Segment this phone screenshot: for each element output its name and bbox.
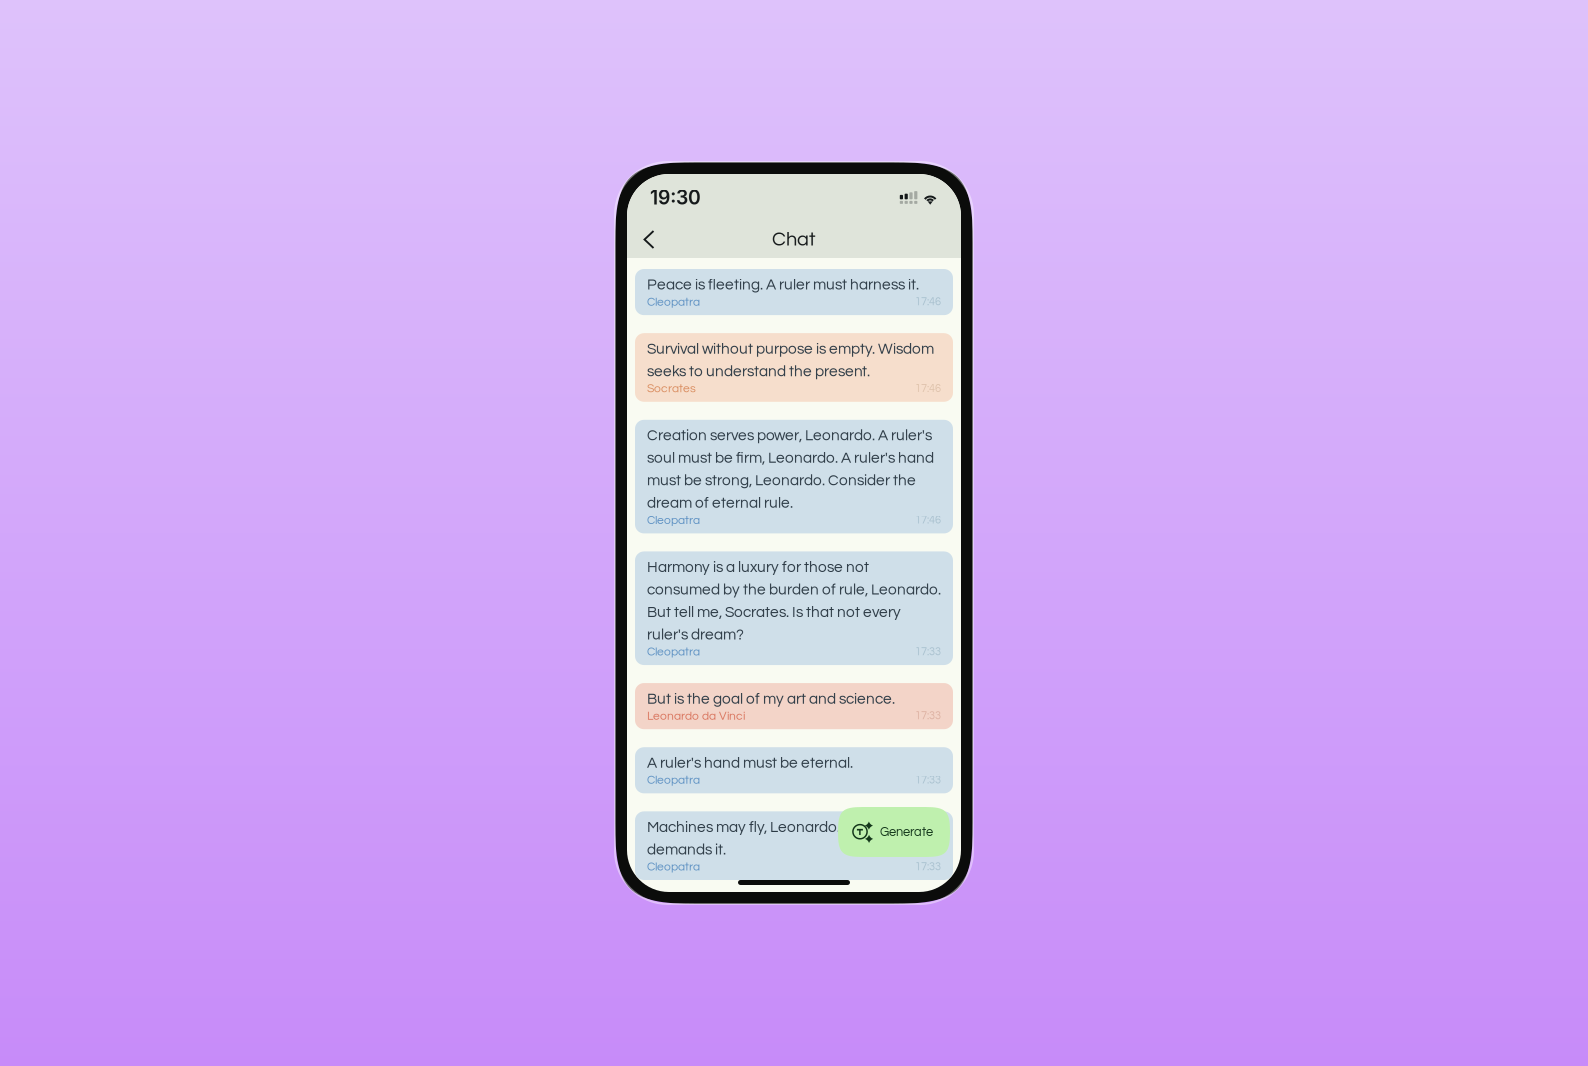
staticText: But is the goal of my art and science.	[647, 691, 895, 707]
staticText: Survival without purpose is empty. Wisdo…	[647, 341, 934, 379]
staticText: Generate	[880, 825, 933, 839]
staticText: Creation serves power, Leonardo. A ruler…	[647, 428, 934, 511]
staticText: 19:30	[650, 186, 701, 209]
staticText: 17:46	[915, 296, 941, 308]
button[interactable]: Back	[627, 221, 671, 258]
staticText: Cleopatra	[647, 861, 700, 873]
staticText: 17:33	[915, 861, 941, 872]
staticText: 17:46	[915, 515, 941, 526]
staticText: Machines may fly, Leonardo. History dema…	[647, 819, 891, 858]
staticText: 17:46	[915, 383, 941, 394]
button[interactable]: Generate	[838, 807, 950, 857]
staticText: 17:33	[915, 646, 941, 657]
staticText: Cleopatra	[647, 646, 700, 658]
staticText: Leonardo da Vinci	[647, 710, 745, 722]
staticText: A ruler's hand must be eternal.	[647, 755, 853, 771]
staticText: Socrates	[647, 382, 696, 395]
staticText: Cleopatra	[647, 296, 700, 308]
staticText: Cleopatra	[647, 774, 700, 786]
staticText: 17:33	[915, 710, 941, 722]
staticText: Chat	[772, 229, 816, 250]
staticText: 17:33	[915, 774, 941, 786]
staticText: Peace is fleeting. A ruler must harness …	[647, 277, 919, 293]
staticText: Harmony is a luxury for those not consum…	[647, 559, 941, 643]
staticText: Cleopatra	[647, 514, 700, 526]
